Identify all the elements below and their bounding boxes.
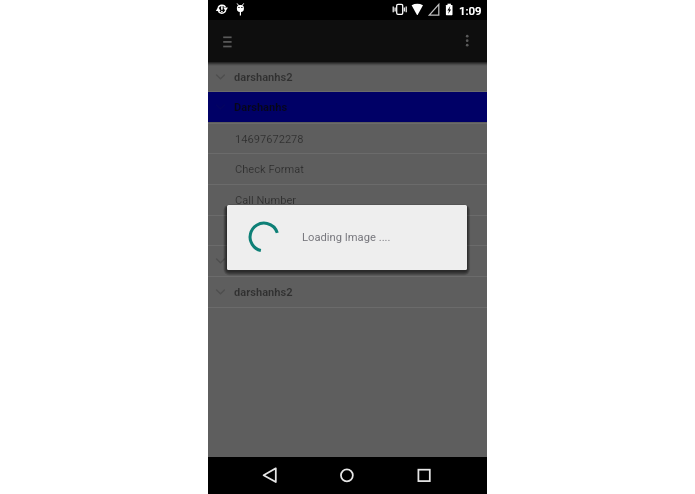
staticText: 14697672278	[235, 133, 304, 146]
staticText: Darshanhs	[234, 101, 288, 114]
staticText: Call Number	[235, 194, 297, 207]
button[interactable]: darshanhs2	[208, 277, 487, 307]
button[interactable]: Check Format	[208, 154, 487, 184]
staticText: Check Format	[235, 163, 304, 176]
staticText: darshanhs2	[234, 71, 293, 84]
button[interactable]: Darshanhs	[208, 92, 487, 122]
button[interactable]: 14697672278	[208, 124, 487, 154]
button[interactable]: Back	[250, 457, 290, 494]
staticText: Loading Image ....	[302, 231, 391, 244]
button[interactable]: More options	[451, 20, 483, 62]
button[interactable]: Send SMS	[208, 216, 487, 246]
button[interactable]: darshanhs2	[208, 246, 487, 276]
staticText: 1:09	[459, 4, 482, 17]
button[interactable]: Recent apps	[404, 457, 444, 494]
button[interactable]: Home	[327, 457, 367, 494]
staticText: Send SMS	[235, 225, 286, 238]
staticText: darshanhs2	[234, 286, 293, 299]
button[interactable]: Call Number	[208, 185, 487, 215]
button[interactable]: darshanhs2	[208, 62, 487, 92]
button[interactable]: Open navigation drawer	[209, 20, 245, 62]
